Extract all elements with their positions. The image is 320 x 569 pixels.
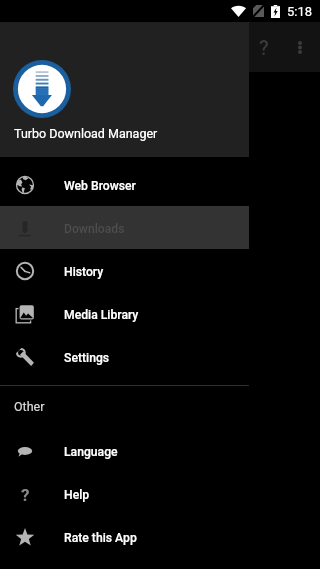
staticText: Other	[14, 399, 45, 414]
button[interactable]: Downloads	[0, 206, 249, 249]
staticText: Turbo Download Manager	[14, 126, 158, 141]
staticText: ?	[21, 485, 30, 503]
staticText: Web Browser	[64, 179, 136, 193]
staticText: Help	[64, 488, 90, 502]
button[interactable]: ?	[0, 472, 249, 515]
staticText: Media Library	[64, 308, 139, 322]
button[interactable]: Settings	[0, 335, 249, 378]
staticText: Rate this App	[64, 531, 137, 545]
button[interactable]: More options	[288, 22, 312, 72]
button[interactable]: Language	[0, 429, 249, 472]
staticText: Settings	[64, 351, 110, 365]
button[interactable]: Help	[250, 22, 277, 72]
staticText: Downloads	[64, 222, 125, 236]
button[interactable]: History	[0, 249, 249, 292]
staticText: 5:18	[287, 4, 313, 19]
staticText: History	[64, 265, 104, 279]
button[interactable]: Media Library	[0, 292, 249, 335]
button[interactable]: Rate this App	[0, 515, 249, 558]
staticText: ?	[259, 36, 269, 59]
button[interactable]: Web Browser	[0, 163, 249, 206]
staticText: Language	[64, 445, 118, 459]
